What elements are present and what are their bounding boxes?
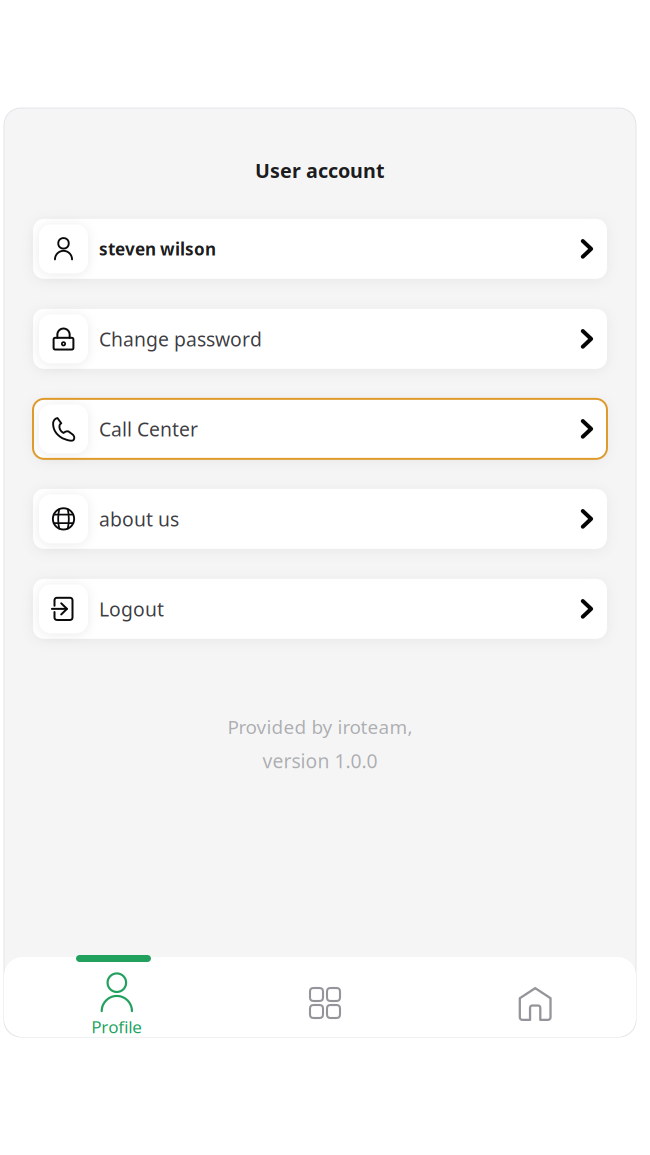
staticText: Logout bbox=[99, 596, 164, 622]
button[interactable]: steven wilson bbox=[33, 219, 607, 279]
button[interactable]: Change password bbox=[33, 309, 607, 369]
staticText: Call Center bbox=[99, 416, 198, 442]
button[interactable]: Services bbox=[221, 957, 428, 1037]
staticText: about us bbox=[99, 506, 179, 532]
staticText: version 1.0.0 bbox=[262, 748, 377, 774]
staticText: Change password bbox=[99, 326, 262, 352]
staticText: steven wilson bbox=[99, 237, 216, 260]
button[interactable]: Call Center bbox=[33, 399, 607, 459]
button[interactable]: Logout bbox=[33, 579, 607, 639]
button[interactable]: about us bbox=[33, 489, 607, 549]
button[interactable]: Home bbox=[428, 957, 636, 1037]
staticText: Profile bbox=[91, 1015, 142, 1038]
button[interactable]: Profile bbox=[13, 957, 221, 1037]
staticText: Provided by iroteam, bbox=[227, 714, 412, 740]
staticText: User account bbox=[255, 157, 385, 184]
